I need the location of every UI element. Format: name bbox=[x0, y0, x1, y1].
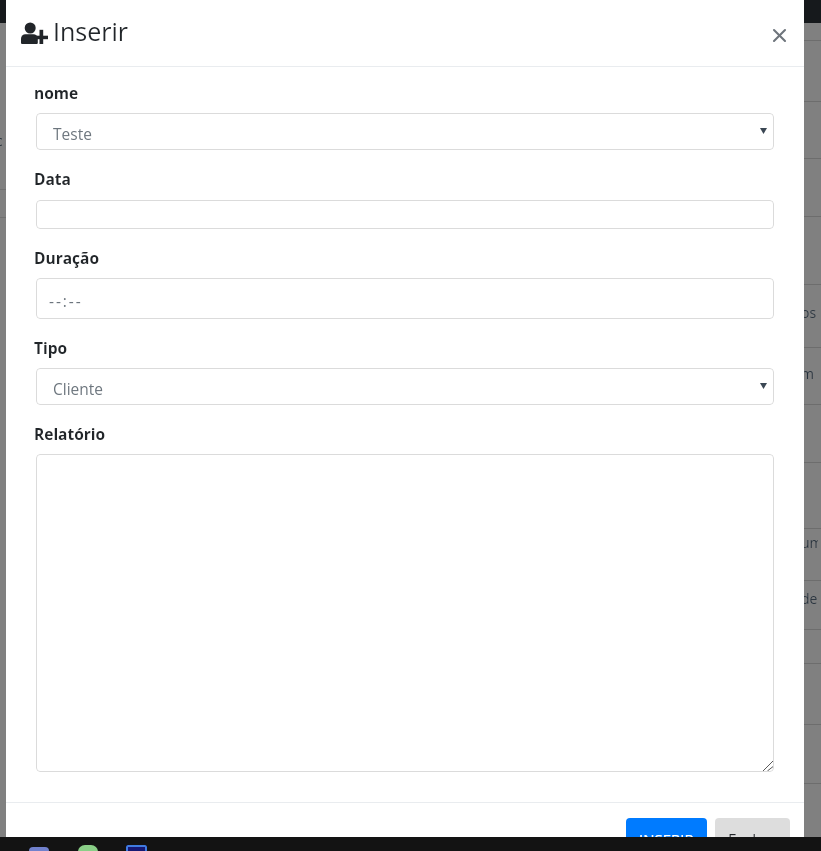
staticText: o bbox=[0, 131, 2, 150]
button[interactable]: WhatsApp bbox=[78, 845, 98, 851]
button[interactable] bbox=[36, 200, 774, 229]
button[interactable]: INSERIR bbox=[626, 818, 707, 851]
staticText: um bbox=[801, 533, 818, 552]
button[interactable]: Inserir bbox=[21, 14, 129, 48]
staticText: Data bbox=[34, 168, 71, 189]
staticText: os bbox=[801, 303, 818, 322]
button[interactable]: Fechar bbox=[763, 18, 795, 50]
staticText: m bbox=[801, 364, 818, 383]
staticText: Teste bbox=[53, 123, 92, 144]
button[interactable]: Editor bbox=[126, 845, 147, 851]
staticText: Inserir bbox=[53, 14, 129, 48]
staticText: INSERIR bbox=[639, 829, 694, 849]
button[interactable]: Fechar bbox=[715, 818, 790, 851]
button[interactable]: Cliente bbox=[36, 368, 774, 405]
button[interactable]: App bbox=[29, 847, 49, 851]
staticText: de bbox=[801, 589, 818, 608]
staticText: Relatório bbox=[34, 423, 106, 444]
button[interactable]: --:-- bbox=[36, 278, 774, 319]
staticText: Cliente bbox=[53, 378, 104, 399]
staticText: . bbox=[801, 418, 818, 437]
staticText: Fechar bbox=[728, 829, 777, 850]
button[interactable] bbox=[36, 454, 774, 772]
staticText: Duração bbox=[34, 247, 99, 268]
staticText: --:-- bbox=[49, 290, 83, 311]
staticText: Tipo bbox=[34, 337, 68, 358]
button[interactable]: Teste bbox=[36, 113, 774, 150]
staticText: nome bbox=[34, 82, 79, 103]
